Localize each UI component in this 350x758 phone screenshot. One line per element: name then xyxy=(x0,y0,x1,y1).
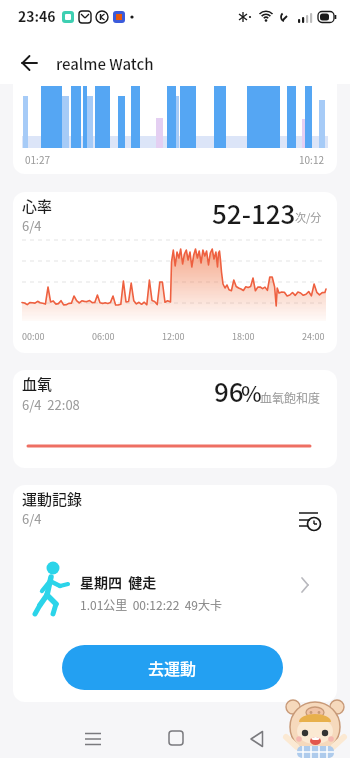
button[interactable] xyxy=(14,47,46,79)
button[interactable] xyxy=(291,503,331,537)
staticText: 星期四 健走 xyxy=(80,572,157,592)
staticText: realme Watch xyxy=(56,53,154,75)
staticText: % xyxy=(241,376,262,408)
staticText: 23:46 xyxy=(18,6,56,26)
staticText: 去運動 xyxy=(148,656,197,679)
staticText: 18:00 xyxy=(232,330,255,343)
staticText: 6/4 22:08 xyxy=(22,395,80,414)
button[interactable]: 星期四 健走 xyxy=(13,572,337,627)
button[interactable] xyxy=(233,720,281,758)
staticText: 06:00 xyxy=(92,330,115,343)
button[interactable]: 去運動 xyxy=(62,645,283,690)
staticText: 10:12 xyxy=(299,152,324,166)
staticText: 次/分 xyxy=(295,209,322,225)
staticText: 運動記錄 xyxy=(22,488,83,510)
staticText: 52-123 xyxy=(212,194,296,232)
staticText: 24:00 xyxy=(302,330,325,343)
staticText: 12:00 xyxy=(162,330,185,343)
staticText: 1.01公里 00:12:22 49大卡 xyxy=(80,596,223,613)
staticText: 01:27 xyxy=(25,152,50,166)
staticText: 00:00 xyxy=(22,330,45,343)
staticText: 血氧飽和度 xyxy=(260,389,321,406)
staticText: 6/4 xyxy=(22,216,42,235)
button[interactable] xyxy=(152,720,200,758)
button[interactable]: 血氧 xyxy=(13,370,337,468)
button[interactable]: 心率 xyxy=(13,192,337,353)
staticText: 心率 xyxy=(22,195,53,217)
staticText: 血氧 xyxy=(22,373,53,395)
button[interactable]: 01:27 xyxy=(13,84,337,174)
button[interactable] xyxy=(69,720,117,758)
staticText: 6/4 xyxy=(22,509,42,528)
staticText: 96 xyxy=(214,372,244,410)
